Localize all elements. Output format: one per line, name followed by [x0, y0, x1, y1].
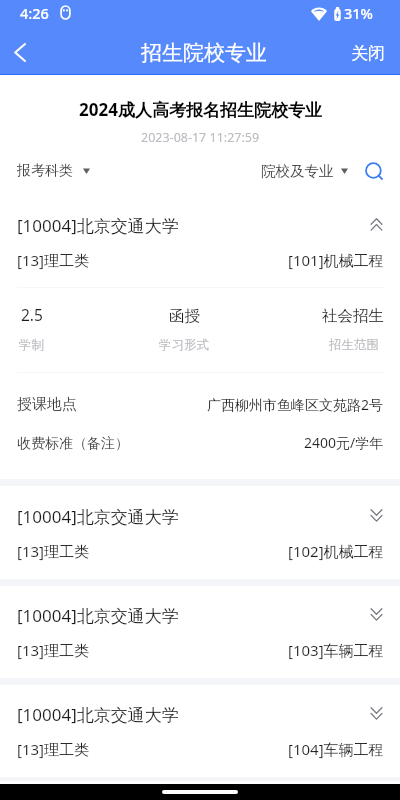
- staticText: 广西柳州市鱼峰区文苑路2号: [207, 395, 384, 414]
- button[interactable]: [10004]北京交通大学: [0, 685, 400, 777]
- staticText: [103]车辆工程: [288, 640, 384, 660]
- button[interactable]: Search: [358, 155, 389, 187]
- staticText: 收费标准（备注）: [17, 435, 129, 453]
- staticText: [13]理工类: [17, 541, 90, 561]
- staticText: 授课地点: [17, 395, 77, 414]
- button[interactable]: Expand: [363, 700, 390, 727]
- staticText: 31%: [344, 3, 373, 23]
- button[interactable]: 院校及专业: [255, 155, 354, 187]
- staticText: 招生范围: [329, 337, 379, 353]
- staticText: [102]机械工程: [288, 541, 384, 561]
- button[interactable]: [10004]北京交通大学: [0, 487, 400, 579]
- staticText: 2024成人高考报名招生院校专业: [79, 98, 322, 121]
- staticText: [10004]北京交通大学: [17, 703, 179, 726]
- staticText: [104]车辆工程: [288, 739, 384, 759]
- button[interactable]: Expand: [363, 502, 390, 529]
- button[interactable]: [10004]北京交通大学: [0, 586, 400, 678]
- button[interactable]: Collapse: [363, 211, 390, 238]
- staticText: [13]理工类: [17, 739, 90, 759]
- button[interactable]: Expand: [363, 601, 390, 628]
- staticText: 学习形式: [159, 337, 209, 353]
- staticText: 报考科类: [17, 162, 73, 180]
- staticText: [10004]北京交通大学: [17, 214, 179, 237]
- staticText: [10004]北京交通大学: [17, 505, 179, 528]
- staticText: 院校及专业: [261, 162, 334, 180]
- staticText: [13]理工类: [17, 250, 90, 270]
- staticText: 2023-08-17 11:27:59: [141, 129, 260, 146]
- staticText: 社会招生: [322, 306, 384, 326]
- staticText: 学制: [19, 337, 44, 353]
- button[interactable]: 关闭: [337, 30, 400, 74]
- button[interactable]: 报考科类: [11, 155, 96, 187]
- button[interactable]: [10004]北京交通大学: [0, 197, 400, 479]
- staticText: 4:26: [20, 3, 49, 23]
- button[interactable]: Back: [3, 30, 36, 74]
- staticText: 招生院校专业: [141, 40, 267, 66]
- staticText: 2400元/学年: [304, 433, 384, 452]
- staticText: [101]机械工程: [288, 250, 384, 270]
- staticText: [10004]北京交通大学: [17, 604, 179, 627]
- staticText: 函授: [169, 306, 200, 326]
- staticText: 关闭: [351, 43, 385, 64]
- staticText: 2.5: [21, 304, 43, 325]
- staticText: [13]理工类: [17, 640, 90, 660]
